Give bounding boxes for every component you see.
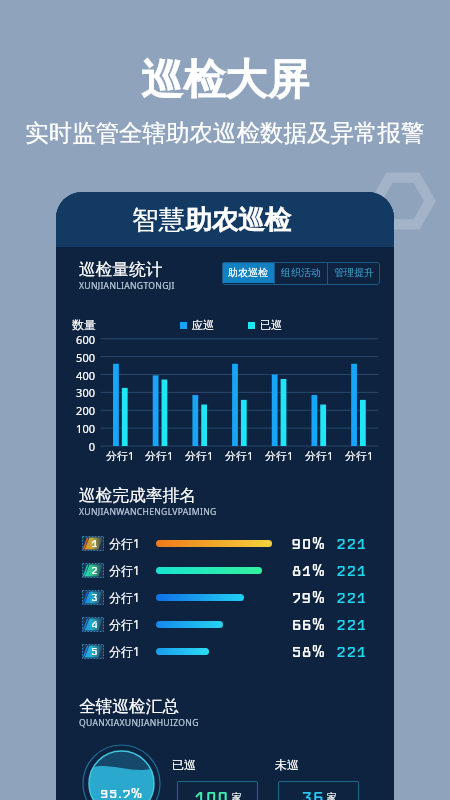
staticText: 221 <box>336 561 367 580</box>
staticText: QUANXIAXUNJIANHUIZONG <box>79 717 199 729</box>
staticText: 分行1 <box>185 448 214 463</box>
staticText: 5 <box>91 645 98 658</box>
staticText: 300 <box>64 385 95 400</box>
button[interactable]: 4 <box>82 610 388 638</box>
staticText: 1 <box>91 537 98 550</box>
staticText: 3 <box>91 591 98 604</box>
staticText: 100 <box>194 786 229 800</box>
staticText: 600 <box>64 332 95 347</box>
staticText: XUNJIANLIANGTONGJI <box>79 280 175 292</box>
staticText: 221 <box>336 642 367 661</box>
button[interactable]: 2 <box>82 556 388 584</box>
staticText: 分行1 <box>109 643 140 659</box>
button[interactable]: 组织活动 <box>275 262 327 283</box>
staticText: 管理提升 <box>334 266 374 279</box>
staticText: 36 <box>301 786 324 800</box>
staticText: 巡检大屏 <box>141 54 309 107</box>
staticText: 数量 <box>72 317 96 332</box>
staticText: 组织活动 <box>281 266 321 279</box>
staticText: 应巡 <box>192 318 214 332</box>
staticText: 智慧 <box>132 203 185 236</box>
staticText: 95.7% <box>100 785 143 800</box>
staticText: 100 <box>64 421 95 436</box>
staticText: 分行1 <box>265 448 294 463</box>
staticText: 助农巡检 <box>228 266 268 279</box>
staticText: 分行1 <box>109 562 140 578</box>
staticText: 500 <box>64 350 95 365</box>
staticText: 221 <box>336 588 367 607</box>
staticText: 全辖巡检汇总 <box>79 696 180 717</box>
staticText: 分行1 <box>109 535 140 551</box>
staticText: 家 <box>327 791 337 800</box>
button[interactable]: 5 <box>82 637 388 665</box>
staticText: XUNJIANWANCHENGLVPAIMING <box>79 506 217 518</box>
staticText: 助农巡检 <box>185 203 291 236</box>
staticText: 实时监管全辖助农巡检数据及异常报警 <box>25 118 425 148</box>
staticText: 221 <box>336 615 367 634</box>
staticText: 分行1 <box>109 589 140 605</box>
button[interactable]: 3 <box>82 583 388 611</box>
staticText: 0 <box>64 439 95 454</box>
staticText: 巡检完成率排名 <box>79 485 196 506</box>
staticText: 分行1 <box>145 448 174 463</box>
staticText: 200 <box>64 403 95 418</box>
button[interactable]: 管理提升 <box>328 262 380 283</box>
staticText: 分行1 <box>345 448 374 463</box>
button[interactable]: 1 <box>82 529 388 557</box>
staticText: 81% <box>286 561 325 580</box>
staticText: 已巡 <box>172 757 196 772</box>
staticText: 66% <box>286 615 325 634</box>
staticText: 已巡 <box>260 318 282 332</box>
staticText: 分行1 <box>305 448 334 463</box>
staticText: 分行1 <box>106 448 135 463</box>
staticText: 分行1 <box>109 616 140 632</box>
staticText: 90% <box>286 534 325 553</box>
staticText: 58% <box>286 642 325 661</box>
staticText: 79% <box>286 588 325 607</box>
staticText: 400 <box>64 368 95 383</box>
staticText: 分行1 <box>225 448 254 463</box>
staticText: 家 <box>232 791 242 800</box>
staticText: 4 <box>91 618 98 631</box>
staticText: 巡检量统计 <box>79 259 163 280</box>
staticText: 未巡 <box>275 757 299 772</box>
button[interactable]: 助农巡检 <box>222 262 274 283</box>
staticText: 2 <box>91 564 98 577</box>
staticText: 221 <box>336 534 367 553</box>
